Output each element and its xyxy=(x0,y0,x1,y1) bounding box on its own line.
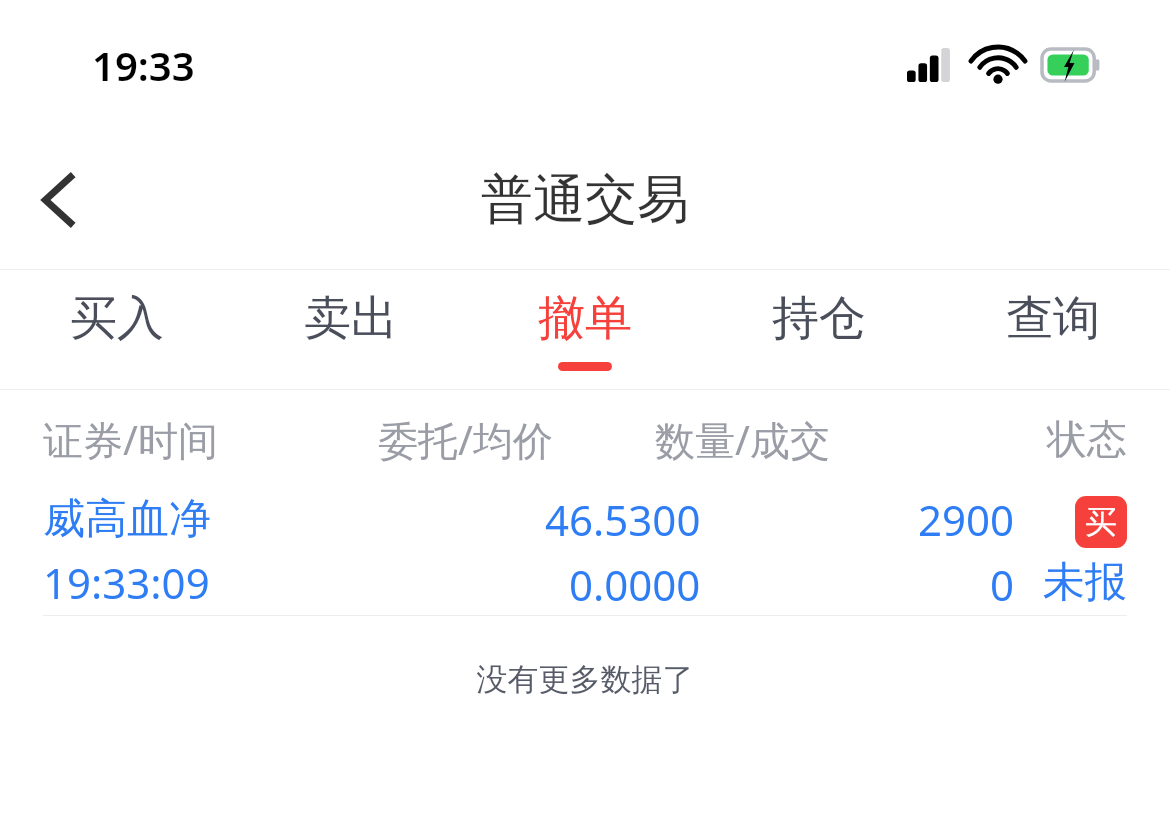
staticText: 普通交易 xyxy=(481,167,689,233)
staticText: 0.0000 xyxy=(569,556,701,613)
button[interactable]: 卖出 xyxy=(234,270,468,390)
staticText: 0 xyxy=(990,556,1015,613)
staticText: 持仓 xyxy=(772,289,866,348)
button[interactable]: 持仓 xyxy=(702,270,936,390)
button[interactable]: Back xyxy=(20,162,96,238)
button[interactable]: 威高血净 xyxy=(0,488,1170,616)
staticText: 未报 xyxy=(1043,556,1127,609)
staticText: 状态 xyxy=(1047,414,1127,464)
staticText: 数量/成交 xyxy=(655,412,830,467)
staticText: 委托/均价 xyxy=(378,412,553,467)
button[interactable]: 查询 xyxy=(936,270,1170,390)
button[interactable]: 撤单 xyxy=(468,270,702,390)
staticText: 撤单 xyxy=(538,289,632,348)
staticText: 买入 xyxy=(70,289,164,348)
staticText: 威高血净 xyxy=(43,493,211,546)
staticText: 19:33 xyxy=(92,38,195,92)
staticText: 卖出 xyxy=(304,289,398,348)
button[interactable]: 买入 xyxy=(0,270,234,390)
staticText: 买 xyxy=(1085,502,1117,542)
staticText: 查询 xyxy=(1006,289,1100,348)
staticText: 没有更多数据了 xyxy=(0,660,1170,699)
staticText: 46.5300 xyxy=(545,491,701,548)
staticText: 证券/时间 xyxy=(43,412,218,467)
staticText: 19:33:09 xyxy=(43,554,210,611)
staticText: 2900 xyxy=(918,491,1015,548)
